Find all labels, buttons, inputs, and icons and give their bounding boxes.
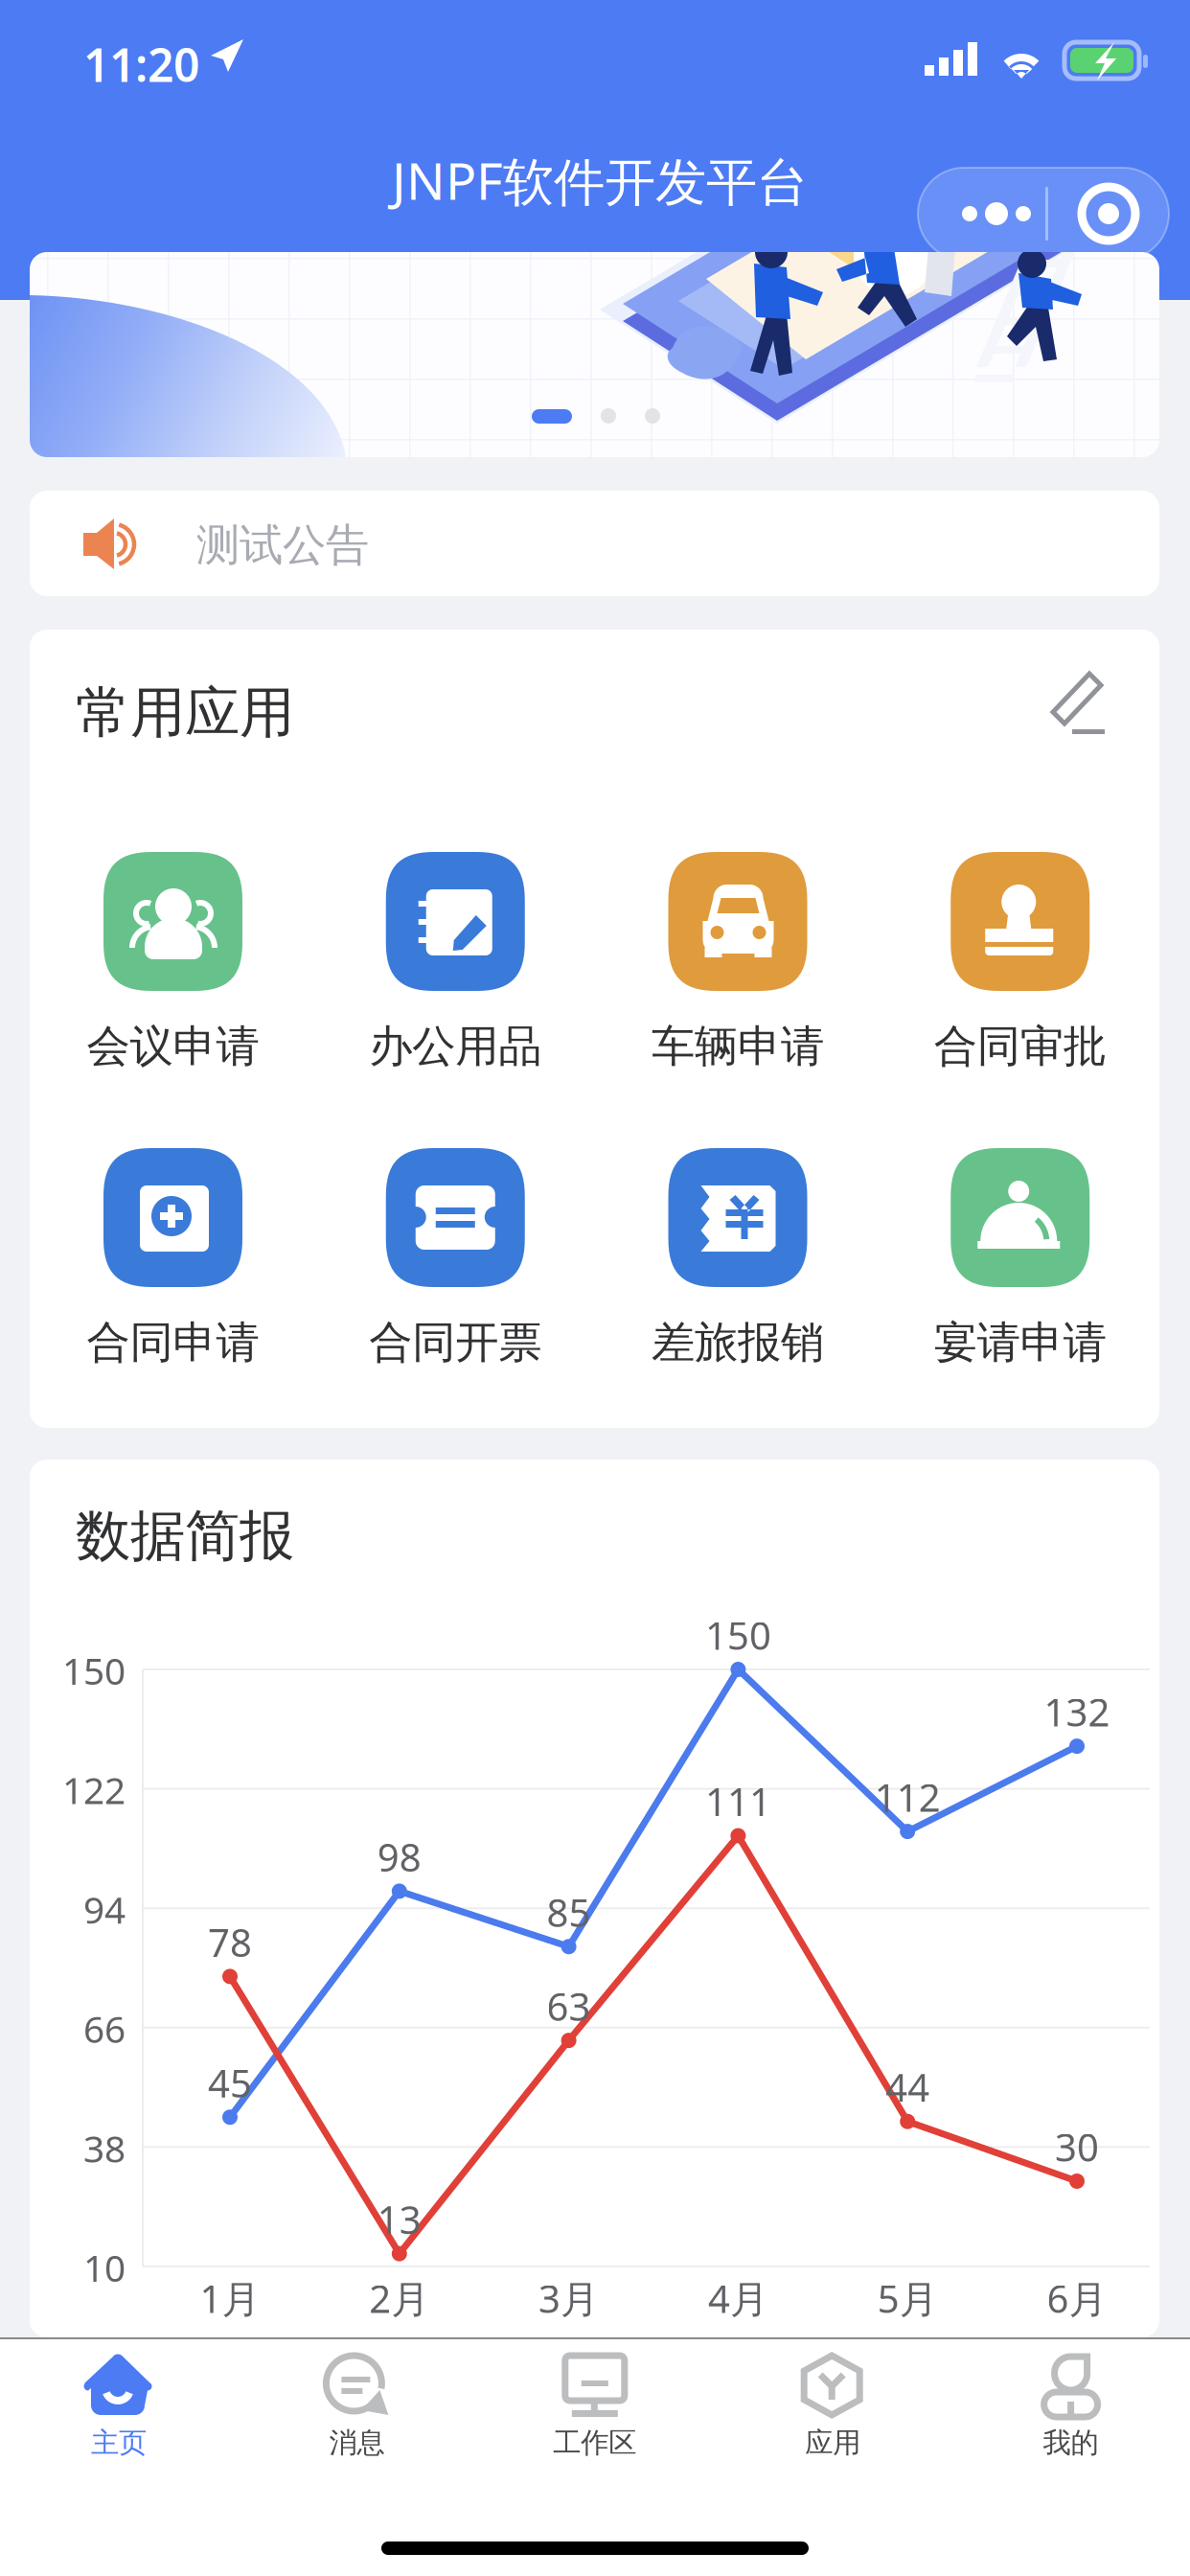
staticText: 差旅报销 xyxy=(652,1316,824,1369)
button[interactable]: Edit apps xyxy=(1045,670,1122,747)
staticText: 44 xyxy=(886,2061,930,2112)
staticText: 常用应用 xyxy=(76,679,294,747)
staticText: 合同审批 xyxy=(934,1020,1106,1073)
staticText: 合同开票 xyxy=(369,1316,542,1369)
staticText: 150 xyxy=(705,1609,771,1660)
staticText: 4月 xyxy=(708,2273,768,2323)
button[interactable]: 应用 xyxy=(714,2334,952,2478)
button[interactable]: 宴请申请 xyxy=(879,1148,1161,1373)
staticText: 111 xyxy=(705,1776,771,1827)
staticText: 10 xyxy=(83,2243,126,2292)
button[interactable]: 工作区 xyxy=(476,2334,714,2478)
staticText: 工作区 xyxy=(553,2426,636,2460)
staticText: 45 xyxy=(208,2057,252,2108)
staticText: 会议申请 xyxy=(87,1020,259,1073)
button[interactable]: 合同审批 xyxy=(879,852,1161,1077)
staticText: 94 xyxy=(83,1885,126,1934)
staticText: 6月 xyxy=(1047,2273,1107,2323)
staticText: JNPF软件开发平台 xyxy=(392,146,808,214)
staticText: 122 xyxy=(62,1765,126,1814)
staticText: 测试公告 xyxy=(196,519,369,572)
staticText: 30 xyxy=(1055,2121,1099,2172)
staticText: 132 xyxy=(1044,1686,1110,1737)
staticText: 3月 xyxy=(539,2273,599,2323)
staticText: 63 xyxy=(547,1980,591,2031)
staticText: 98 xyxy=(377,1831,421,1882)
button[interactable]: More options xyxy=(918,168,1169,260)
staticText: 66 xyxy=(83,2004,126,2053)
button[interactable]: 差旅报销 xyxy=(596,1148,879,1373)
staticText: 11:20 xyxy=(83,34,199,95)
staticText: 数据简报 xyxy=(76,1502,294,1570)
button[interactable]: 测试公告 xyxy=(30,491,1159,596)
staticText: 主页 xyxy=(91,2426,147,2460)
staticText: 38 xyxy=(83,2123,126,2173)
button[interactable]: 车辆申请 xyxy=(596,852,879,1077)
button[interactable]: 合同开票 xyxy=(314,1148,597,1373)
staticText: 我的 xyxy=(1043,2426,1099,2460)
staticText: 13 xyxy=(377,2194,421,2245)
staticText: 85 xyxy=(547,1887,591,1938)
button[interactable]: 我的 xyxy=(952,2334,1190,2478)
staticText: 112 xyxy=(874,1771,941,1822)
button[interactable]: 合同申请 xyxy=(32,1148,314,1373)
staticText: 2月 xyxy=(369,2273,430,2323)
staticText: 合同申请 xyxy=(87,1316,259,1369)
staticText: 车辆申请 xyxy=(652,1020,824,1073)
staticText: 150 xyxy=(62,1646,126,1695)
staticText: 78 xyxy=(208,1916,252,1967)
button[interactable]: 主页 xyxy=(0,2334,238,2478)
staticText: 办公用品 xyxy=(369,1020,542,1073)
staticText: 宴请申请 xyxy=(934,1316,1106,1369)
button[interactable]: 会议申请 xyxy=(32,852,314,1077)
button[interactable]: 消息 xyxy=(238,2334,476,2478)
staticText: 消息 xyxy=(329,2426,385,2460)
staticText: 5月 xyxy=(877,2273,938,2323)
button[interactable]: 办公用品 xyxy=(314,852,597,1077)
staticText: 应用 xyxy=(805,2426,861,2460)
staticText: 1月 xyxy=(200,2273,260,2323)
